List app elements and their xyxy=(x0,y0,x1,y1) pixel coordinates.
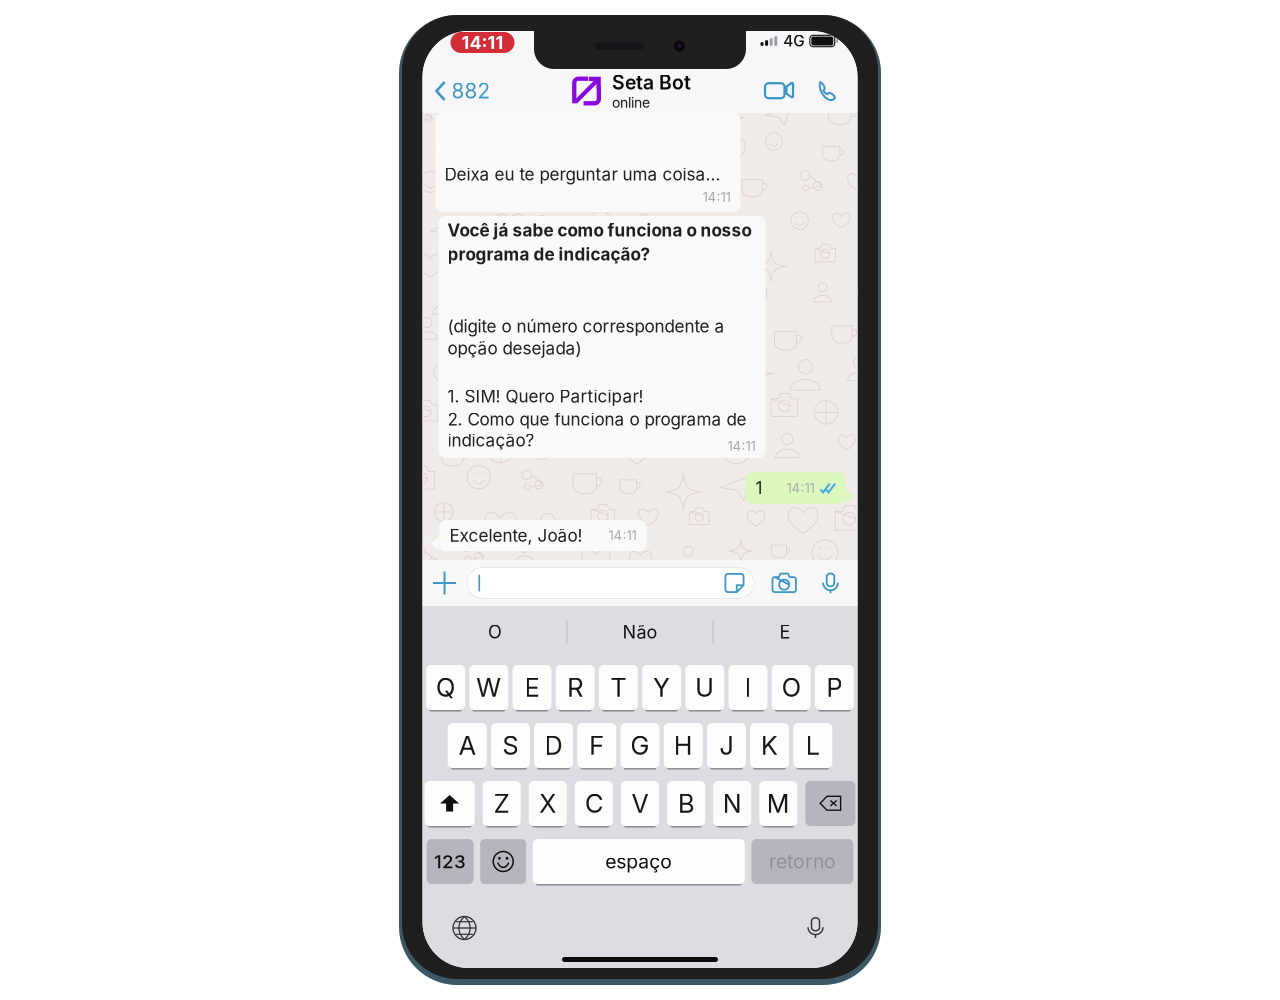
button[interactable]: E xyxy=(713,607,856,657)
button[interactable]: F xyxy=(577,722,616,769)
button[interactable]: Shift xyxy=(425,780,475,827)
staticText: 4G xyxy=(783,32,804,50)
button[interactable]: Switch keyboard xyxy=(438,911,490,945)
staticText: 1. SIM! Quero Participar! xyxy=(447,386,643,407)
staticText: online xyxy=(612,94,650,111)
button[interactable]: T xyxy=(599,664,638,711)
staticText: R xyxy=(567,672,583,703)
button[interactable]: retorno xyxy=(751,838,853,885)
button[interactable]: B xyxy=(667,780,705,827)
staticText: J xyxy=(719,730,733,761)
button[interactable]: Attach xyxy=(422,560,466,606)
button[interactable]: Z xyxy=(483,780,521,827)
button[interactable]: M xyxy=(759,780,797,827)
staticText: B xyxy=(678,788,694,819)
button[interactable]: I xyxy=(728,664,767,711)
button[interactable]: O xyxy=(423,607,566,657)
button[interactable]: Não xyxy=(567,607,712,657)
button[interactable]: Stickers xyxy=(716,560,752,606)
staticText: 14:11 xyxy=(702,189,730,205)
staticText: G xyxy=(630,730,649,761)
staticText: D xyxy=(545,730,563,761)
button[interactable]: E xyxy=(512,664,551,711)
staticText: V xyxy=(631,788,648,819)
staticText: S xyxy=(502,730,518,761)
button[interactable]: Y xyxy=(642,664,681,711)
button[interactable]: C xyxy=(575,780,613,827)
button[interactable]: W xyxy=(469,664,508,711)
staticText: Deixa eu te perguntar uma coisa... xyxy=(444,164,720,185)
button[interactable]: O xyxy=(772,664,811,711)
button[interactable]: Dictation xyxy=(789,911,841,945)
button[interactable]: Camera xyxy=(763,560,805,606)
staticText: P xyxy=(826,672,842,703)
button[interactable]: 882 xyxy=(422,69,499,113)
button[interactable]: L xyxy=(793,722,832,769)
staticText: 14:11 xyxy=(786,480,814,496)
staticText: H xyxy=(674,730,693,761)
staticText: E xyxy=(524,672,539,703)
staticText: M xyxy=(767,788,790,819)
button[interactable]: D xyxy=(534,722,573,769)
staticText: L xyxy=(806,730,820,761)
staticText: O xyxy=(782,672,801,703)
staticText: K xyxy=(761,730,778,761)
button[interactable]: Numbers xyxy=(427,838,474,885)
staticText: Excelente, João! xyxy=(449,525,582,546)
button[interactable]: K xyxy=(750,722,789,769)
button[interactable]: U xyxy=(685,664,724,711)
staticText: E xyxy=(779,621,790,643)
button[interactable]: V xyxy=(621,780,659,827)
staticText: O xyxy=(488,621,502,643)
button[interactable]: P xyxy=(815,664,854,711)
staticText: (digite o número correspondente a xyxy=(447,316,724,337)
staticText: Seta Bot xyxy=(612,71,691,94)
staticText: A xyxy=(459,730,476,761)
staticText: Y xyxy=(653,672,670,703)
staticText: opção desejada) xyxy=(447,338,581,359)
staticText: U xyxy=(695,672,714,703)
staticText: Q xyxy=(436,672,455,703)
staticText: indicação? xyxy=(447,430,534,451)
button[interactable]: G xyxy=(620,722,659,769)
staticText: Não xyxy=(622,621,657,643)
staticText: W xyxy=(476,672,501,703)
staticText: N xyxy=(723,788,742,819)
staticText: 14:11 xyxy=(727,438,755,454)
staticText: C xyxy=(585,788,603,819)
staticText: 1 xyxy=(755,478,762,498)
button[interactable]: Emoji xyxy=(480,838,526,885)
staticText: 882 xyxy=(452,78,491,103)
staticText: T xyxy=(610,672,626,703)
staticText: I xyxy=(744,672,751,703)
button[interactable]: Voice call xyxy=(814,75,838,107)
staticText: 123 xyxy=(434,850,466,873)
button[interactable]: espaço xyxy=(533,838,745,885)
button[interactable]: Q xyxy=(426,664,465,711)
button[interactable]: Voice message xyxy=(812,560,848,606)
staticText: retorno xyxy=(769,850,836,873)
staticText: 2. Como que funciona o programa de xyxy=(447,409,746,430)
staticText: espaço xyxy=(605,850,672,873)
staticText: X xyxy=(539,788,556,819)
staticText: 14:11 xyxy=(608,527,636,543)
button[interactable]: X xyxy=(529,780,567,827)
button[interactable]: S xyxy=(491,722,530,769)
staticText: programa de indicação? xyxy=(447,244,650,265)
staticText: Você já sabe como funciona o nosso xyxy=(447,220,751,241)
staticText: 14:11 xyxy=(461,32,503,53)
button[interactable]: Video call xyxy=(764,75,794,107)
button[interactable]: A xyxy=(448,722,487,769)
button[interactable]: Delete xyxy=(805,780,855,827)
staticText: F xyxy=(589,730,604,761)
button[interactable]: N xyxy=(713,780,751,827)
button[interactable]: H xyxy=(664,722,703,769)
button[interactable]: J xyxy=(707,722,746,769)
button[interactable]: R xyxy=(556,664,595,711)
staticText: Z xyxy=(494,788,510,819)
